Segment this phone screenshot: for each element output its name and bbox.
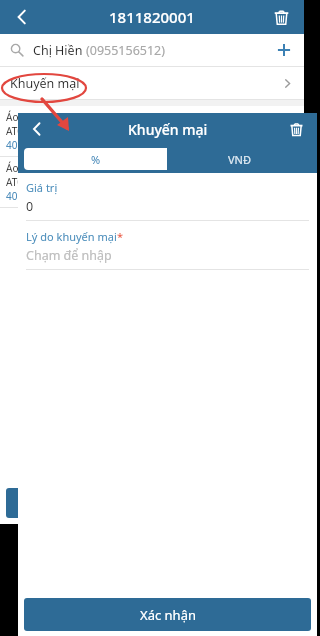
staticText: 400.000 [6, 138, 43, 152]
staticText: * [117, 229, 124, 244]
staticText: 1811820001 [109, 7, 195, 27]
staticText: VNĐ [228, 152, 251, 167]
other: Add [274, 40, 294, 60]
button[interactable]: Lý do khuyến mại [26, 229, 309, 264]
staticText: Áo thun nam [6, 110, 67, 124]
staticText: Xác nhận [140, 606, 196, 624]
staticText: Khuyến mại [10, 75, 80, 92]
staticText: AT0012 - Trắng - L [6, 175, 90, 189]
staticText: Áo thun nam [6, 161, 67, 175]
staticText: Khuyến mại [128, 120, 208, 139]
button[interactable]: Delete [284, 117, 308, 141]
staticText: % [91, 152, 101, 167]
button[interactable]: Chị Hiền [0, 34, 304, 66]
button[interactable]: Khuyến mại [0, 67, 304, 99]
button[interactable]: Thanh toán [6, 488, 298, 518]
button[interactable]: VNĐ [167, 148, 311, 170]
staticText: (0955156512) [86, 42, 166, 59]
staticText: 400.000 [6, 189, 43, 203]
staticText: Chị Hiền [33, 42, 86, 59]
button[interactable]: Back [24, 116, 50, 142]
button[interactable]: Xác nhận [24, 598, 311, 631]
staticText: Lý do khuyến mại [26, 229, 117, 244]
staticText: 0 [26, 198, 34, 215]
button[interactable]: Back [8, 3, 36, 31]
staticText: AT0012 - Trắng - L [6, 124, 90, 138]
staticText: Giá trị [26, 180, 58, 195]
staticText: Chạm để nhập [26, 247, 112, 264]
button[interactable]: % [24, 148, 167, 170]
button[interactable]: Giá trị [26, 180, 309, 215]
button[interactable]: Delete [268, 4, 294, 30]
